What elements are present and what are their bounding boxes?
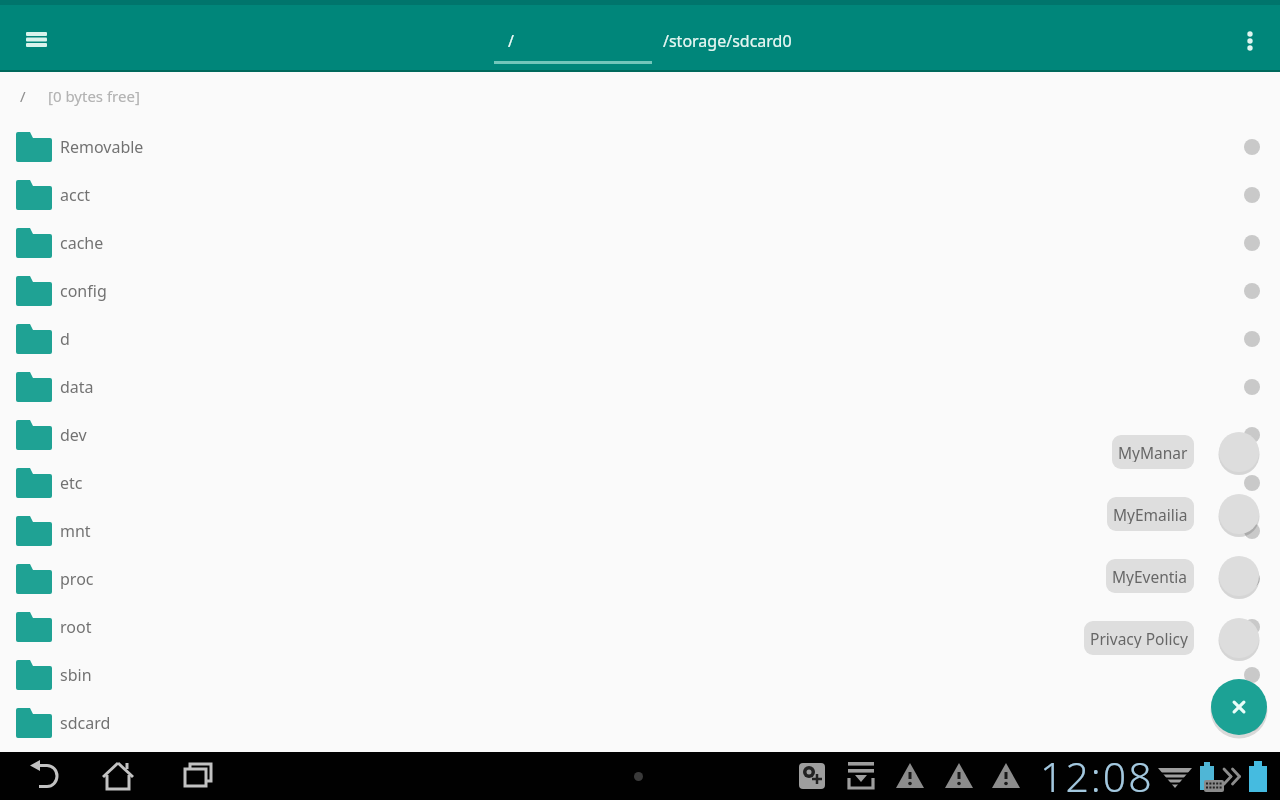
staticText: d bbox=[60, 328, 70, 350]
button[interactable]: dev bbox=[0, 411, 1280, 459]
button[interactable]: Privacy Policy bbox=[1084, 621, 1194, 655]
staticText: Privacy Policy bbox=[1090, 628, 1188, 648]
staticText: MyEmailia bbox=[1113, 504, 1188, 524]
button[interactable] bbox=[1217, 616, 1261, 660]
staticText: / bbox=[20, 86, 26, 106]
button[interactable] bbox=[1217, 430, 1261, 474]
button[interactable]: MyEventia bbox=[1106, 559, 1194, 593]
button[interactable]: sdcard bbox=[0, 699, 1280, 747]
staticText: mnt bbox=[60, 520, 91, 542]
button[interactable] bbox=[1230, 17, 1270, 65]
staticText: acct bbox=[60, 184, 91, 206]
staticText: dev bbox=[60, 424, 87, 446]
button[interactable] bbox=[92, 752, 144, 800]
button[interactable]: mnt bbox=[0, 507, 1280, 555]
button[interactable]: etc bbox=[0, 459, 1280, 507]
staticText: cache bbox=[60, 232, 104, 254]
button[interactable] bbox=[12, 15, 60, 63]
staticText: [0 bytes free] bbox=[48, 86, 140, 106]
staticText: root bbox=[60, 616, 92, 638]
staticText: 12:08 bbox=[1040, 748, 1154, 796]
button[interactable]: data bbox=[0, 363, 1280, 411]
staticText: MyManar bbox=[1118, 442, 1188, 462]
button[interactable]: MyEmailia bbox=[1107, 497, 1194, 531]
button[interactable]: acct bbox=[0, 171, 1280, 219]
button[interactable]: root bbox=[0, 603, 1280, 651]
staticText: /storage/sdcard0 bbox=[663, 30, 792, 52]
staticText: proc bbox=[60, 568, 94, 590]
button[interactable]: cache bbox=[0, 219, 1280, 267]
staticText: sdcard bbox=[60, 712, 111, 734]
button[interactable]: sbin bbox=[0, 651, 1280, 699]
button[interactable]: proc bbox=[0, 555, 1280, 603]
button[interactable]: / bbox=[494, 8, 652, 64]
staticText: config bbox=[60, 280, 107, 302]
staticText: MyEventia bbox=[1112, 566, 1188, 586]
button[interactable] bbox=[1217, 492, 1261, 536]
staticText: data bbox=[60, 376, 94, 398]
button[interactable]: MyManar bbox=[1112, 435, 1194, 469]
staticText: / bbox=[508, 30, 514, 52]
button[interactable] bbox=[1217, 554, 1261, 598]
button[interactable]: /storage/sdcard0 bbox=[652, 8, 822, 64]
button[interactable]: config bbox=[0, 267, 1280, 315]
button[interactable]: d bbox=[0, 315, 1280, 363]
staticText: sbin bbox=[60, 664, 92, 686]
button[interactable]: Removable bbox=[0, 123, 1280, 171]
staticText: Removable bbox=[60, 136, 144, 158]
button[interactable] bbox=[170, 752, 226, 800]
button[interactable] bbox=[1211, 679, 1267, 735]
staticText: etc bbox=[60, 472, 83, 494]
button[interactable] bbox=[16, 752, 72, 800]
